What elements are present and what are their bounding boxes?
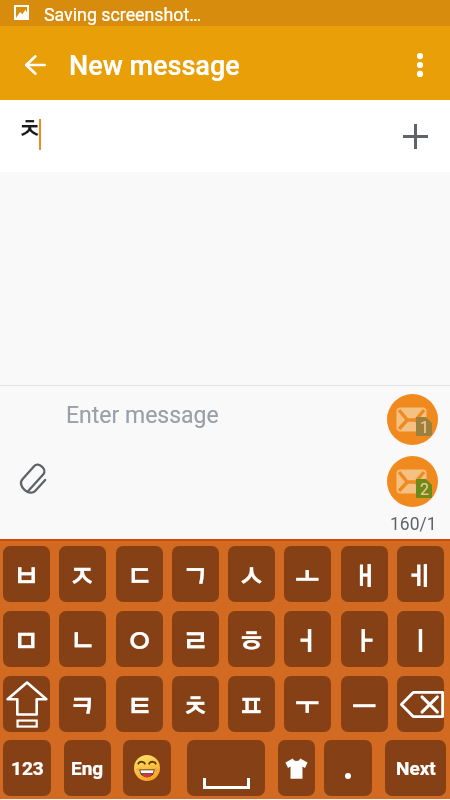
button[interactable]: ㅊ [172,676,219,732]
button[interactable]: Stickers [278,740,315,796]
staticText: Next [396,757,436,779]
staticText: ㅗ [295,565,320,590]
button[interactable]: ㅣ [397,611,444,667]
staticText: Eng [71,757,104,779]
staticText: ㅁ [14,630,39,655]
button[interactable]: Back [9,39,61,91]
staticText: ㅌ [127,695,152,720]
staticText: 160/1 [390,514,437,535]
button[interactable]: ㅓ [284,611,331,667]
staticText: ㄷ [127,565,152,590]
staticText: ㅊ [183,695,208,720]
staticText: ㅎ [239,630,264,655]
button[interactable]: ㅗ [284,546,331,602]
button[interactable]: ㄴ [59,611,106,667]
staticText: ㄱ [183,565,208,590]
button[interactable]: ㄱ [172,546,219,602]
button[interactable]: ㅌ [116,676,163,732]
button[interactable]: ㅈ [59,546,106,602]
button[interactable]: Period [324,740,372,796]
staticText: New message [69,50,240,82]
button[interactable]: ㄷ [116,546,163,602]
button[interactable]: Next [385,740,446,796]
button[interactable]: ㅇ [116,611,163,667]
staticText: ㅈ [70,565,95,590]
staticText: 123 [11,757,44,779]
button[interactable]: Backspace [397,676,444,732]
staticText: ㅜ [295,695,320,720]
staticText: ㅣ [408,630,433,655]
button[interactable]: ㅜ [284,676,331,732]
staticText: ㅂ [14,565,39,590]
button[interactable]: More options [394,39,446,91]
staticText: ㅡ [352,695,377,720]
button[interactable]: Add recipient [387,108,443,164]
button[interactable]: ㅅ [228,546,275,602]
staticText: ㅇ [127,630,152,655]
staticText: ㅓ [295,630,320,655]
button[interactable]: ㅔ [397,546,444,602]
button[interactable]: ㅁ [3,611,50,667]
button[interactable]: Eng [64,740,111,796]
button[interactable]: 123 [3,740,51,796]
staticText: ㅊ [18,119,41,142]
staticText: ㅏ [352,630,377,655]
button[interactable]: ㅋ [59,676,106,732]
button[interactable]: ㄹ [172,611,219,667]
button[interactable]: ㅎ [228,611,275,667]
staticText: ㅔ [408,565,433,590]
staticText: ㅍ [239,695,264,720]
staticText: 1 [420,418,429,437]
staticText: ㄴ [70,630,95,655]
button[interactable]: ㅏ [341,611,388,667]
button[interactable]: Space [187,740,265,796]
staticText: ㅋ [70,695,95,720]
button[interactable]: ㅂ [3,546,50,602]
staticText: 2 [420,480,429,499]
staticText: ㄹ [183,630,208,655]
button[interactable]: ㅍ [228,676,275,732]
staticText: ㅅ [239,565,264,590]
button[interactable]: Emoji [123,740,171,796]
button[interactable]: ㅡ [341,676,388,732]
button[interactable]: Attach [7,456,57,506]
button[interactable]: Send with SIM 1 [387,394,438,445]
button[interactable]: ㅐ [341,546,388,602]
staticText: Saving screenshot… [44,4,202,25]
staticText: ㅐ [352,565,377,590]
button[interactable]: Shift [3,676,50,732]
button[interactable]: Send with SIM 2 [387,456,438,507]
staticText: Enter message [66,402,219,429]
